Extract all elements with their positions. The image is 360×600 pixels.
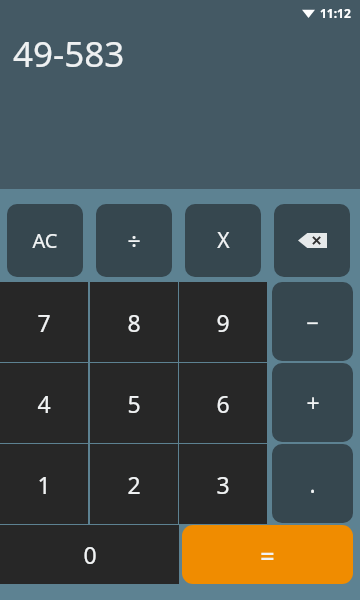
- staticText: 5: [127, 388, 141, 419]
- button[interactable]: AC: [7, 204, 83, 277]
- staticText: 0: [83, 539, 97, 570]
- button[interactable]: +: [272, 363, 353, 442]
- staticText: 8: [127, 307, 141, 338]
- button[interactable]: 2: [90, 444, 178, 524]
- button[interactable]: 9: [179, 282, 267, 362]
- button[interactable]: 5: [90, 363, 178, 443]
- staticText: AC: [32, 227, 58, 254]
- button[interactable]: Backspace: [274, 204, 350, 277]
- button[interactable]: 0: [0, 525, 179, 584]
- staticText: −: [306, 307, 319, 337]
- staticText: 1: [37, 469, 51, 500]
- button[interactable]: 6: [179, 363, 267, 443]
- staticText: 6: [216, 388, 230, 419]
- staticText: 7: [37, 307, 51, 338]
- staticText: X: [217, 226, 230, 255]
- staticText: 11:12: [320, 5, 351, 21]
- staticText: 49-583: [13, 30, 125, 78]
- staticText: .: [309, 468, 316, 499]
- staticText: 3: [216, 469, 230, 500]
- staticText: ÷: [127, 225, 141, 256]
- button[interactable]: .: [272, 444, 353, 523]
- staticText: 4: [37, 388, 51, 419]
- button[interactable]: −: [272, 282, 353, 361]
- button[interactable]: 7: [0, 282, 88, 362]
- staticText: 2: [127, 469, 141, 500]
- staticText: =: [260, 538, 275, 572]
- button[interactable]: =: [182, 525, 353, 584]
- button[interactable]: 8: [90, 282, 178, 362]
- staticText: 9: [216, 307, 230, 338]
- button[interactable]: X: [185, 204, 261, 277]
- button[interactable]: 3: [179, 444, 267, 524]
- button[interactable]: ÷: [96, 204, 172, 277]
- button[interactable]: 4: [0, 363, 88, 443]
- button[interactable]: 1: [0, 444, 88, 524]
- staticText: +: [306, 387, 320, 418]
